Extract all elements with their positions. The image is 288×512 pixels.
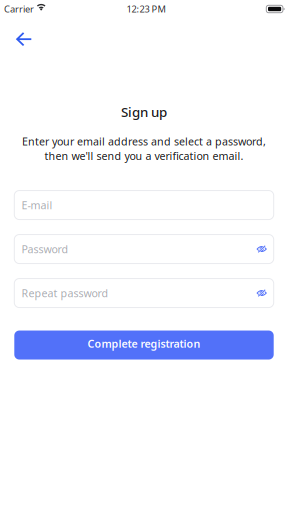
- staticText: Complete registration: [87, 336, 200, 351]
- staticText: then we'll send you a verification email…: [44, 149, 243, 163]
- button[interactable]: Repeat password: [14, 278, 274, 307]
- button[interactable]: Show Password: [254, 238, 270, 260]
- button[interactable]: Password: [14, 234, 274, 263]
- button[interactable]: Complete registration: [14, 330, 274, 359]
- staticText: Enter your email address and select a pa…: [22, 134, 266, 148]
- button[interactable]: Show Repeat password: [254, 282, 270, 304]
- staticText: 12:23 PM: [126, 3, 165, 15]
- staticText: Sign up: [121, 103, 167, 121]
- staticText: E-mail: [21, 198, 52, 212]
- staticText: Repeat password: [21, 286, 108, 300]
- staticText: Password: [21, 242, 68, 256]
- button[interactable]: Back: [7, 24, 41, 54]
- button[interactable]: E-mail: [14, 190, 274, 219]
- staticText: Carrier: [4, 3, 34, 15]
